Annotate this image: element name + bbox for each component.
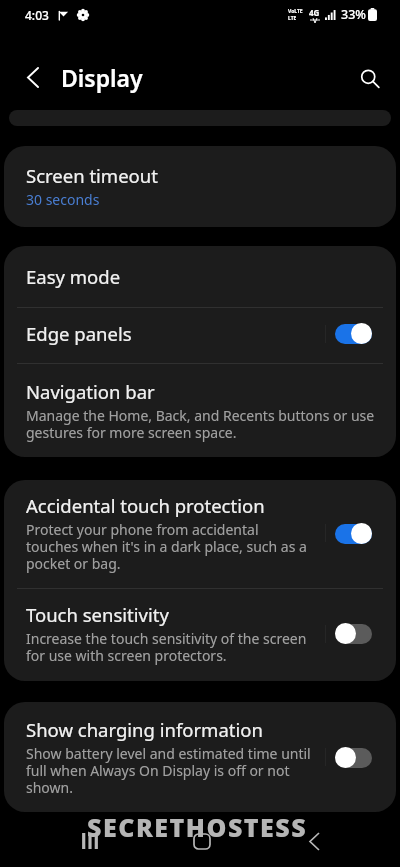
button[interactable]: Search [350, 59, 390, 99]
staticText: Screen timeout [26, 163, 158, 188]
button[interactable]: Edge panels [4, 308, 396, 363]
button[interactable]: Easy mode [4, 246, 396, 307]
staticText: VoLTE [288, 8, 303, 15]
staticText: Show charging information [26, 717, 263, 742]
staticText: LTE [288, 15, 297, 22]
button[interactable]: Toggle on [335, 523, 372, 544]
staticText: Manage the Home, Back, and Recents butto… [26, 406, 384, 442]
staticText: 33% [341, 6, 366, 23]
button[interactable]: Toggle off [335, 747, 372, 768]
staticText: Edge panels [26, 321, 132, 346]
staticText: Accidental touch protection [26, 493, 265, 518]
button[interactable]: Navigate up [15, 59, 51, 95]
staticText: Easy mode [26, 264, 121, 289]
staticText: Navigation bar [26, 379, 155, 404]
staticText: SECRETHOSTESS [87, 810, 308, 844]
staticText: 4:03 [25, 7, 49, 23]
button[interactable]: Accidental touch protection [4, 480, 396, 588]
staticText: Protect your phone from accidental touch… [26, 520, 311, 573]
staticText: Touch sensitivity [26, 602, 169, 627]
button[interactable]: Back [290, 817, 338, 865]
button[interactable]: Screen timeout [4, 146, 396, 227]
staticText: Increase the touch sensitivity of the sc… [26, 629, 311, 665]
button[interactable]: Show charging information [4, 702, 396, 812]
button[interactable]: Recent apps [66, 817, 114, 865]
button[interactable]: Toggle off [335, 623, 372, 644]
button[interactable]: Navigation bar [4, 364, 396, 457]
staticText: 4G [309, 7, 320, 18]
staticText: 30 seconds [26, 190, 100, 209]
staticText: Show battery level and estimated time un… [26, 744, 311, 797]
button[interactable]: Touch sensitivity [4, 589, 396, 681]
button[interactable]: Toggle on [335, 323, 372, 344]
button[interactable]: Home [178, 817, 226, 865]
staticText: Display [61, 62, 143, 93]
